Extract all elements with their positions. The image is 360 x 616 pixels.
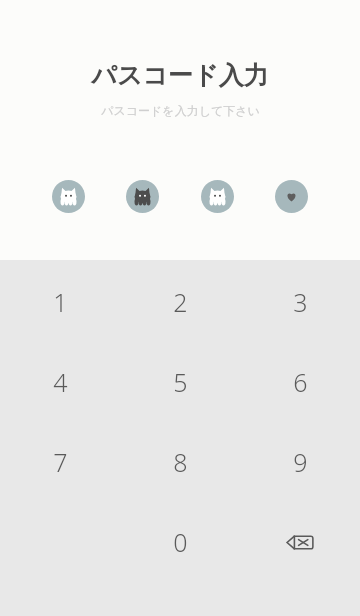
button[interactable]: Passcode digit 4	[275, 180, 308, 213]
button[interactable]: 9	[240, 422, 360, 502]
staticText: 4	[53, 365, 68, 399]
button[interactable]: 6	[240, 342, 360, 422]
staticText: パスコードを入力して下さい	[101, 103, 260, 118]
button[interactable]: 4	[0, 342, 120, 422]
staticText: 3	[293, 285, 308, 319]
button[interactable]: Passcode digit 1	[52, 180, 85, 213]
staticText: パスコード入力	[91, 60, 269, 91]
button[interactable]: 2	[120, 262, 240, 342]
staticText: 6	[293, 365, 308, 399]
staticText: 7	[53, 445, 68, 479]
staticText: 5	[173, 365, 188, 399]
staticText: 0	[173, 525, 188, 559]
button[interactable]: 3	[240, 262, 360, 342]
button[interactable]: 5	[120, 342, 240, 422]
staticText: 8	[173, 445, 188, 479]
button[interactable]: 8	[120, 422, 240, 502]
button[interactable]: Passcode digit 2	[126, 180, 159, 213]
staticText: 1	[53, 285, 68, 319]
button[interactable]: 0	[120, 502, 240, 582]
button[interactable]: Backspace	[240, 502, 360, 582]
staticText: 2	[173, 285, 188, 319]
staticText: 9	[293, 445, 308, 479]
button[interactable]: Passcode digit 3	[201, 180, 234, 213]
button[interactable]: 1	[0, 262, 120, 342]
button[interactable]: 7	[0, 422, 120, 502]
